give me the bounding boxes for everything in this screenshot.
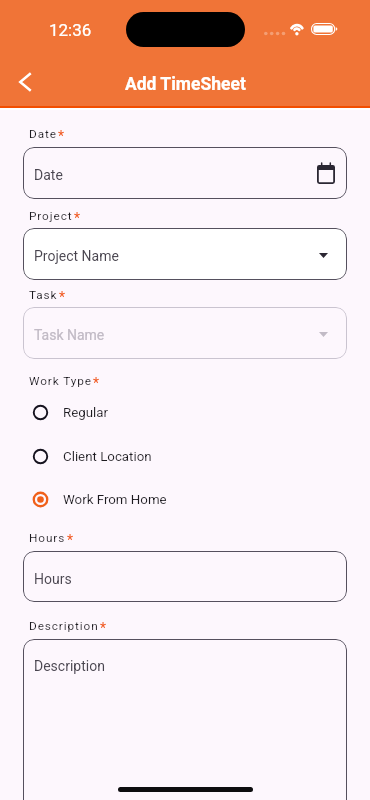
staticText: Hours xyxy=(29,531,66,545)
staticText: Date xyxy=(34,167,63,183)
staticText: * xyxy=(100,620,107,636)
button[interactable]: Hours xyxy=(23,551,347,602)
button[interactable]: Date xyxy=(23,147,347,199)
staticText: Add TimeSheet xyxy=(125,74,246,95)
button[interactable]: Client Location xyxy=(24,434,346,478)
staticText: * xyxy=(93,375,100,391)
button[interactable]: Regular xyxy=(24,390,346,434)
staticText: Date xyxy=(29,127,57,141)
staticText: Hours xyxy=(34,571,72,587)
staticText: Description xyxy=(29,619,99,633)
staticText: Regular xyxy=(63,405,109,421)
staticText: * xyxy=(58,128,65,144)
button[interactable]: Task Name xyxy=(23,307,347,359)
button[interactable]: Project Name xyxy=(23,228,347,280)
button[interactable]: Description xyxy=(23,639,347,800)
staticText: Project Name xyxy=(34,248,119,264)
staticText: Task Name xyxy=(34,327,105,343)
staticText: Task xyxy=(29,288,58,302)
staticText: Work From Home xyxy=(63,492,167,508)
button[interactable]: Back xyxy=(5,62,45,102)
staticText: Client Location xyxy=(63,449,152,465)
button[interactable]: Work From Home xyxy=(24,477,346,521)
staticText: 12:36 xyxy=(49,20,92,40)
staticText: * xyxy=(74,210,81,226)
staticText: * xyxy=(59,289,66,305)
staticText: Project xyxy=(29,209,73,223)
staticText: * xyxy=(67,532,74,548)
staticText: Description xyxy=(34,658,105,674)
staticText: Work Type xyxy=(29,374,92,388)
